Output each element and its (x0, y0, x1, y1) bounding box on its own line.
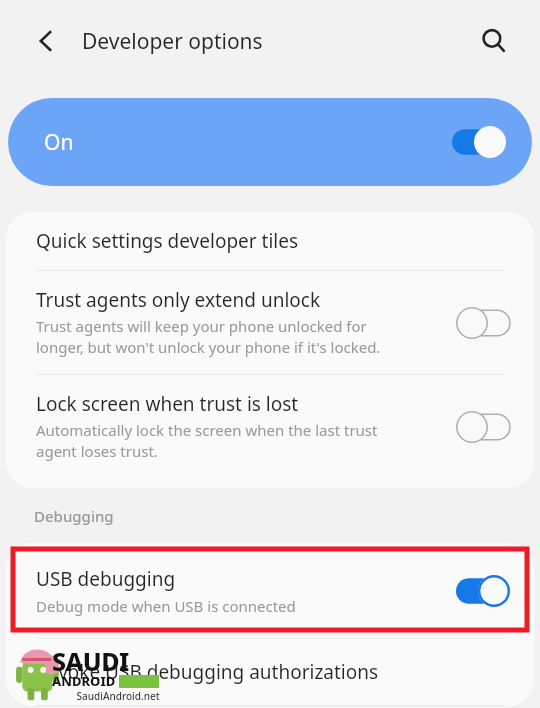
staticText: Trust agents only extend unlock (36, 287, 321, 313)
staticText: SAUDI (52, 644, 129, 678)
button[interactable]: Revoke USB debugging authorizations (6, 639, 534, 705)
staticText: USB debugging (36, 566, 176, 592)
staticText: Debug mode when USB is connected (36, 596, 296, 616)
button[interactable]: Back (22, 17, 70, 65)
button[interactable]: Search (470, 17, 518, 65)
staticText: SaudiAndroid.net (76, 689, 160, 703)
button[interactable]: On (8, 98, 532, 186)
staticText: Trust agents will keep your phone unlock… (36, 316, 381, 358)
staticText: Revoke USB debugging authorizations (36, 659, 379, 685)
staticText: Debugging (34, 506, 114, 526)
staticText: Developer options (82, 27, 263, 56)
button[interactable]: Toggle on (452, 126, 506, 158)
button[interactable]: Quick settings developer tiles (6, 212, 534, 270)
button[interactable]: Toggle off (456, 411, 510, 443)
staticText: Quick settings developer tiles (36, 228, 299, 254)
staticText: ANDROID (52, 672, 116, 690)
button[interactable]: Toggle off (456, 307, 510, 339)
staticText: On (44, 128, 74, 157)
button[interactable]: Toggle on (456, 575, 510, 607)
button[interactable]: Lock screen when trust is lost (6, 375, 534, 478)
button[interactable]: Trust agents only extend unlock (6, 271, 534, 374)
button[interactable]: USB debugging (6, 543, 534, 638)
staticText: Automatically lock the screen when the l… (36, 420, 378, 462)
staticText: Lock screen when trust is lost (36, 391, 299, 417)
